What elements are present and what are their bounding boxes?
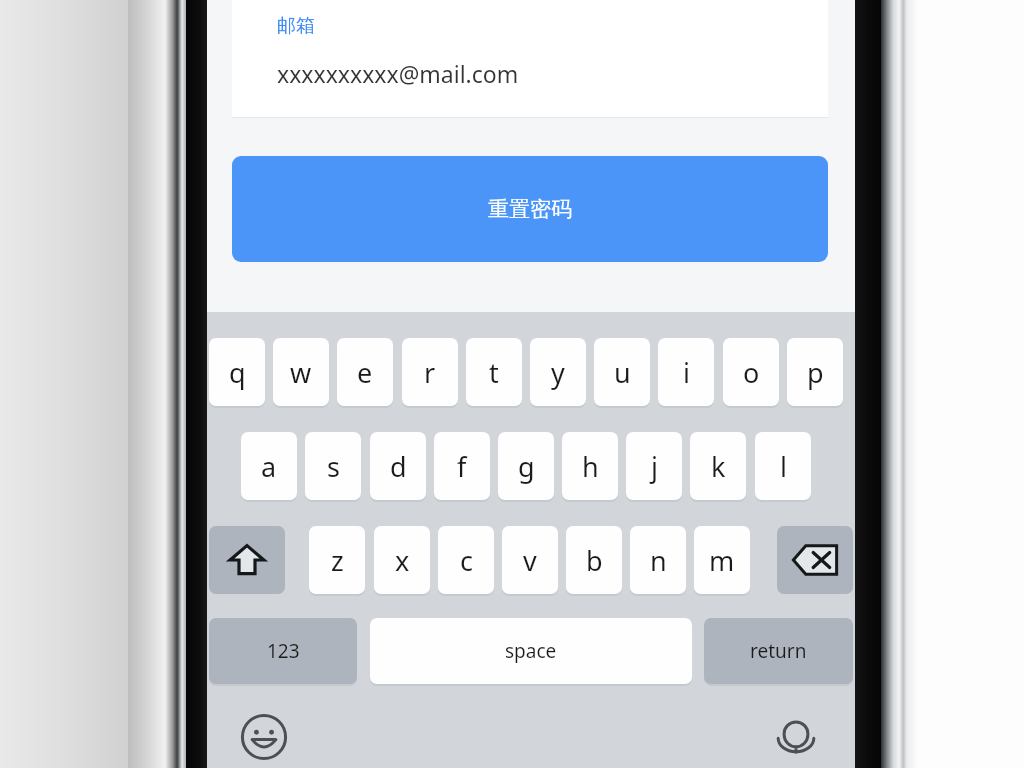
- button[interactable]: y: [530, 338, 586, 406]
- staticText: y: [551, 354, 565, 391]
- staticText: 重置密码: [488, 196, 572, 222]
- staticText: n: [650, 542, 667, 579]
- button[interactable]: e: [337, 338, 393, 406]
- button[interactable]: p: [787, 338, 843, 406]
- button[interactable]: a: [241, 432, 297, 500]
- button[interactable]: k: [690, 432, 746, 500]
- button[interactable]: f: [434, 432, 490, 500]
- button[interactable]: v: [502, 526, 558, 594]
- staticText: x: [395, 542, 410, 579]
- staticText: m: [709, 542, 735, 579]
- staticText: f: [457, 448, 467, 485]
- staticText: z: [331, 542, 344, 579]
- button[interactable]: Shift: [209, 526, 285, 594]
- button[interactable]: return: [704, 618, 853, 684]
- staticText: return: [750, 638, 807, 664]
- staticText: s: [327, 448, 340, 485]
- button[interactable]: q: [209, 338, 265, 406]
- button[interactable]: c: [438, 526, 494, 594]
- staticText: g: [518, 448, 535, 485]
- staticText: j: [651, 448, 658, 485]
- staticText: r: [424, 354, 436, 391]
- staticText: q: [229, 354, 246, 391]
- button[interactable]: d: [370, 432, 426, 500]
- staticText: d: [390, 448, 407, 485]
- button[interactable]: h: [562, 432, 618, 500]
- button[interactable]: Voice input: [769, 710, 823, 764]
- button[interactable]: Emoji keyboard: [237, 710, 291, 764]
- button[interactable]: b: [566, 526, 622, 594]
- button[interactable]: 重置密码: [232, 156, 828, 262]
- staticText: i: [683, 354, 690, 391]
- button[interactable]: r: [402, 338, 458, 406]
- button[interactable]: 邮箱: [232, 0, 828, 118]
- staticText: v: [523, 542, 537, 579]
- button[interactable]: o: [723, 338, 779, 406]
- button[interactable]: Delete: [777, 526, 853, 594]
- staticText: a: [261, 448, 277, 485]
- staticText: t: [489, 354, 499, 391]
- button[interactable]: n: [630, 526, 686, 594]
- button[interactable]: z: [309, 526, 365, 594]
- button[interactable]: x: [374, 526, 430, 594]
- button[interactable]: space: [370, 618, 692, 684]
- staticText: u: [614, 354, 631, 391]
- button[interactable]: u: [594, 338, 650, 406]
- button[interactable]: t: [466, 338, 522, 406]
- staticText: xxxxxxxxxx@mail.com: [277, 58, 519, 89]
- staticText: p: [807, 354, 824, 391]
- button[interactable]: j: [626, 432, 682, 500]
- button[interactable]: g: [498, 432, 554, 500]
- staticText: o: [743, 354, 760, 391]
- staticText: b: [586, 542, 603, 579]
- staticText: space: [505, 638, 557, 664]
- staticText: 邮箱: [277, 14, 315, 38]
- button[interactable]: s: [305, 432, 361, 500]
- staticText: w: [290, 354, 312, 391]
- button[interactable]: w: [273, 338, 329, 406]
- staticText: l: [780, 448, 787, 485]
- button[interactable]: 123: [209, 618, 357, 684]
- staticText: k: [711, 448, 726, 485]
- staticText: h: [582, 448, 599, 485]
- staticText: c: [460, 542, 473, 579]
- button[interactable]: i: [658, 338, 714, 406]
- staticText: e: [357, 354, 373, 391]
- button[interactable]: m: [694, 526, 750, 594]
- staticText: 123: [267, 638, 300, 664]
- button[interactable]: l: [755, 432, 811, 500]
